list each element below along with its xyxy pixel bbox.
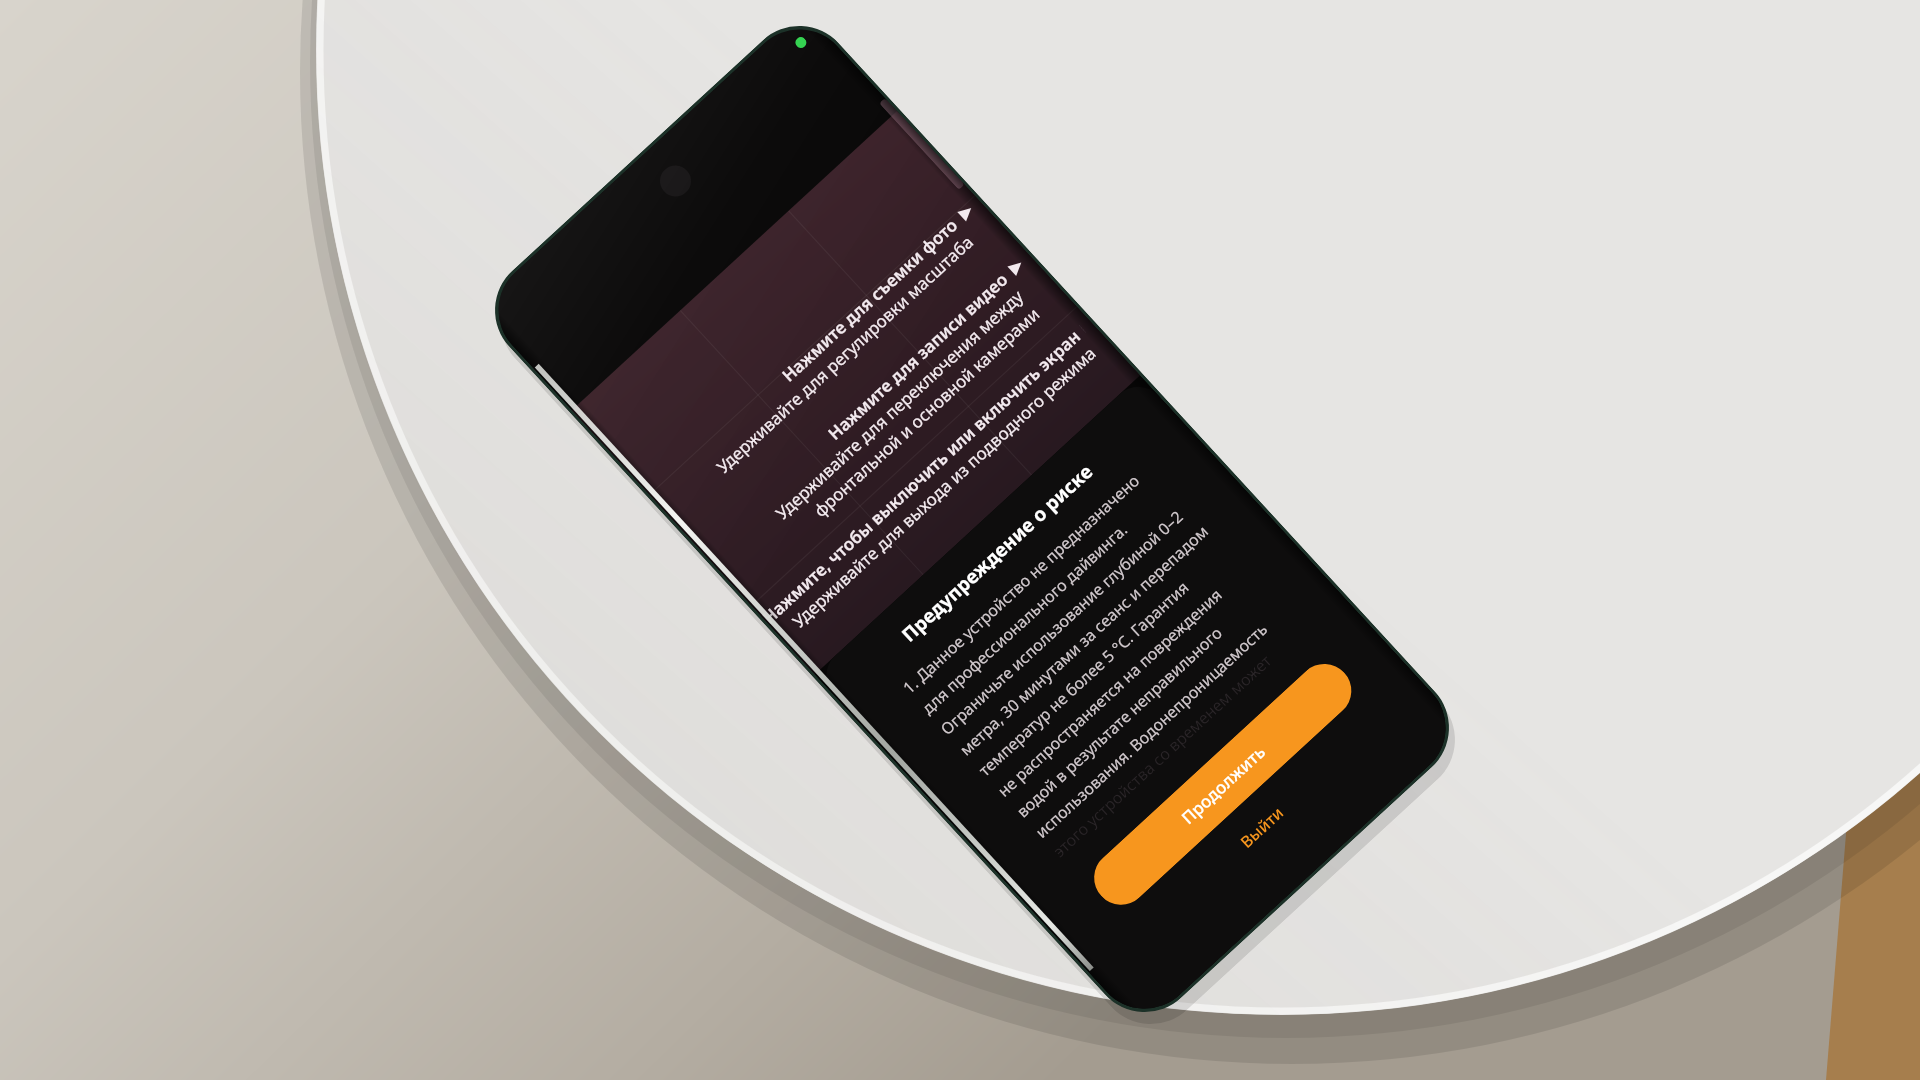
staticText: Удерживайте для переключения между фронт… <box>770 285 1044 542</box>
button[interactable]: Продолжить <box>1083 653 1362 916</box>
staticText: Удерживайте для выхода из подводного реж… <box>787 342 1100 633</box>
button[interactable]: Выйти <box>1125 698 1399 956</box>
staticText: Выйти <box>1235 801 1289 853</box>
staticText: 1. Данное устройство не предназначено дл… <box>898 458 1289 843</box>
staticText: Удерживайте для регулировки масштаба <box>711 230 978 478</box>
staticText: Нажмите для записи видео <box>822 268 1012 445</box>
staticText: Предупреждение о риске <box>896 458 1098 647</box>
staticText: Продолжить <box>1176 740 1270 829</box>
staticText: Нажмите, чтобы выключить или включить эк… <box>757 325 1085 629</box>
staticText: этого устройства со временем может <box>1048 649 1277 862</box>
staticText: Нажмите для съемки фото <box>776 214 962 387</box>
